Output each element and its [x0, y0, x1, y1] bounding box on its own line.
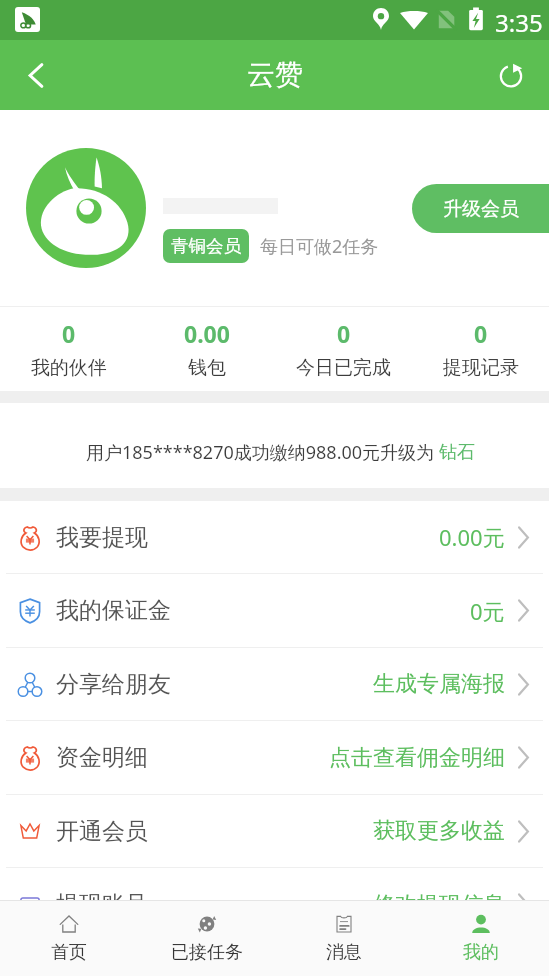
button[interactable]: 开通会员	[0, 795, 549, 868]
staticText: 提现记录	[443, 356, 519, 380]
staticText: 钱包	[188, 356, 226, 380]
button[interactable]: 提现账号	[0, 868, 549, 900]
staticText: 修改提现信息	[373, 891, 505, 900]
button[interactable]: 升级会员	[412, 184, 549, 233]
staticText: 用户185****8270成功缴纳988.00元升级为	[86, 440, 439, 465]
button[interactable]: 首页	[0, 901, 138, 976]
staticText: 首页	[51, 941, 87, 964]
button[interactable]: 用户185****8270成功缴纳988.00元升级为	[0, 403, 549, 488]
button[interactable]: 0	[0, 318, 138, 380]
staticText: 0	[474, 318, 488, 349]
staticText: 今日已完成	[296, 356, 391, 380]
staticText: 我的保证金	[56, 596, 171, 625]
staticText: 我的	[463, 941, 499, 964]
button[interactable]: Back	[8, 47, 64, 103]
staticText: 获取更多收益	[373, 817, 505, 845]
staticText: 钻石	[439, 441, 475, 464]
staticText: 青铜会员	[171, 235, 241, 257]
button[interactable]: 我要提现	[0, 501, 549, 574]
staticText: 已接任务	[171, 941, 243, 964]
staticText: 我要提现	[56, 523, 148, 552]
staticText: 消息	[326, 941, 362, 964]
staticText: 提现账号	[56, 890, 148, 900]
staticText: 3:35	[495, 6, 543, 39]
button[interactable]: 青铜会员	[163, 229, 249, 263]
staticText: 0	[337, 318, 351, 349]
button[interactable]: 0	[275, 318, 412, 380]
staticText: 0	[62, 318, 76, 349]
staticText: 分享给朋友	[56, 670, 171, 699]
staticText: 升级会员	[443, 197, 519, 221]
button[interactable]: Avatar	[26, 148, 146, 268]
button[interactable]: 已接任务	[138, 901, 275, 976]
button[interactable]: 我的	[412, 901, 549, 976]
staticText: 0.00元	[439, 522, 505, 552]
button[interactable]: 分享给朋友	[0, 648, 549, 721]
staticText: 我的伙伴	[31, 356, 107, 380]
button[interactable]: 资金明细	[0, 721, 549, 795]
button[interactable]: 0.00	[138, 318, 275, 380]
staticText: 0元	[470, 596, 505, 626]
staticText: 资金明细	[56, 743, 148, 772]
button[interactable]: Refresh	[483, 47, 539, 103]
staticText: 开通会员	[56, 817, 148, 846]
staticText: 生成专属海报	[373, 670, 505, 698]
button[interactable]: 我的保证金	[0, 574, 549, 648]
staticText: 点击查看佣金明细	[329, 744, 505, 772]
staticText: 0.00	[184, 318, 230, 349]
button[interactable]: 消息	[275, 901, 412, 976]
button[interactable]: 0	[412, 318, 549, 380]
staticText: 云赞	[247, 57, 303, 92]
staticText: 每日可做2任务	[260, 234, 379, 259]
